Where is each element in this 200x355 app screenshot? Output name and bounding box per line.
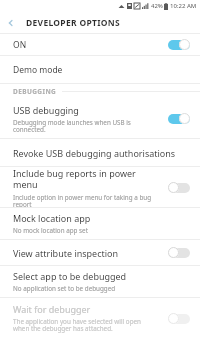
button[interactable]: Revoke USB debugging authorisations [0, 139, 200, 166]
button[interactable]: Toggle [168, 247, 190, 258]
staticText: Include bug reports in power menu [13, 167, 162, 191]
button[interactable]: Back [0, 12, 22, 33]
staticText: Select app to be debugged [13, 270, 127, 282]
staticText: No mock location app set [13, 226, 88, 235]
button[interactable]: Demo mode [0, 56, 200, 83]
button[interactable]: Wait for debugger [0, 298, 200, 338]
staticText: Demo mode [13, 64, 63, 76]
button[interactable]: USB debugging [0, 99, 200, 138]
staticText: Include option in power menu for taking … [13, 193, 152, 207]
button[interactable]: Toggle [168, 113, 190, 124]
button[interactable]: ON [0, 34, 200, 55]
staticText: USB debugging [13, 104, 79, 116]
button[interactable]: Include bug reports in power menu [0, 167, 200, 207]
button[interactable]: Toggle [168, 39, 190, 50]
staticText: 42% [151, 2, 163, 10]
staticText: No application set to be debugged [13, 284, 116, 293]
staticText: Wait for debugger [13, 303, 91, 315]
button[interactable]: View attribute inspection [0, 240, 200, 265]
staticText: Mock location app [13, 212, 91, 224]
staticText: ON [13, 39, 27, 51]
staticText: DEBUGGING [13, 87, 57, 96]
button[interactable]: Toggle [168, 182, 190, 193]
staticText: 10:22 AM [170, 2, 197, 10]
staticText: Debugging mode launches when USB is conn… [13, 118, 131, 134]
staticText: The application you have selected will o… [13, 317, 141, 333]
button[interactable]: Select app to be debugged [0, 266, 200, 297]
button[interactable]: Toggle [168, 313, 190, 324]
staticText: DEVELOPER OPTIONS [26, 17, 121, 29]
staticText: Revoke USB debugging authorisations [13, 147, 176, 159]
staticText: View attribute inspection [13, 247, 119, 259]
button[interactable]: Mock location app [0, 208, 200, 239]
